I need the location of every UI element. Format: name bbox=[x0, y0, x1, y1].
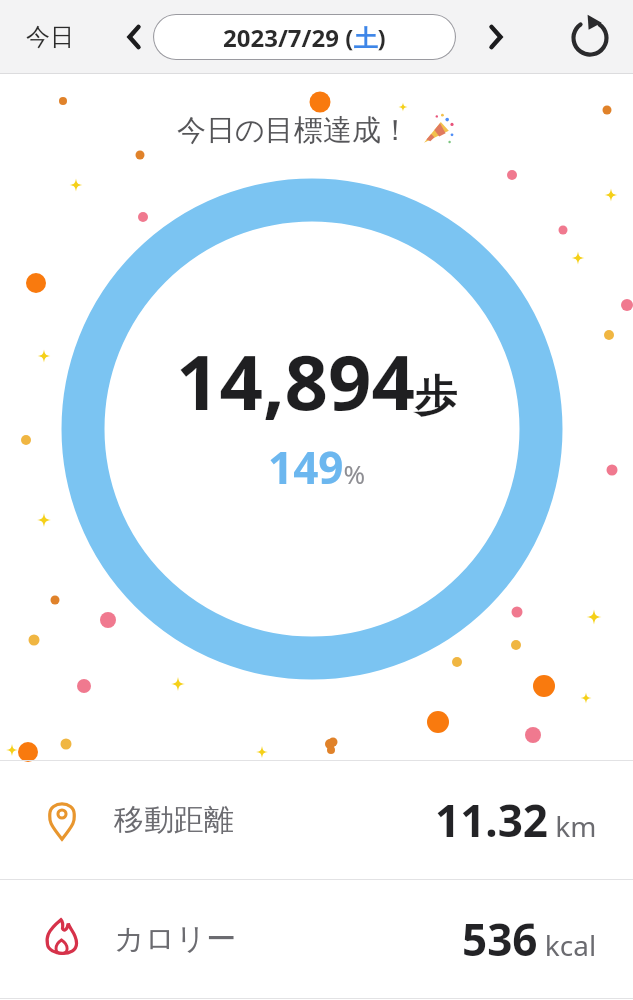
staticText: 14,894歩 bbox=[176, 329, 458, 433]
staticText: 今日 bbox=[26, 22, 74, 52]
other: 移動距離 bbox=[36, 794, 88, 846]
button[interactable]: カロリー bbox=[0, 880, 633, 998]
staticText: 11.32 km bbox=[435, 790, 597, 850]
other: カロリー bbox=[36, 913, 88, 965]
staticText: 今日の目標達成！ bbox=[177, 112, 410, 149]
button[interactable]: 2023/7/29 (土) bbox=[153, 14, 456, 60]
button[interactable]: 次の日 bbox=[474, 15, 518, 59]
button[interactable]: 今日 bbox=[18, 16, 82, 58]
staticText: 149% bbox=[268, 437, 366, 497]
button[interactable]: 前の日 bbox=[112, 15, 156, 59]
staticText: カロリー bbox=[114, 920, 237, 958]
staticText: 536 kcal bbox=[462, 909, 597, 969]
staticText: 2023/7/29 (土) bbox=[223, 21, 386, 54]
button[interactable]: 再読み込み bbox=[565, 12, 615, 62]
staticText: 移動距離 bbox=[114, 801, 234, 839]
button[interactable]: 移動距離 bbox=[0, 761, 633, 879]
